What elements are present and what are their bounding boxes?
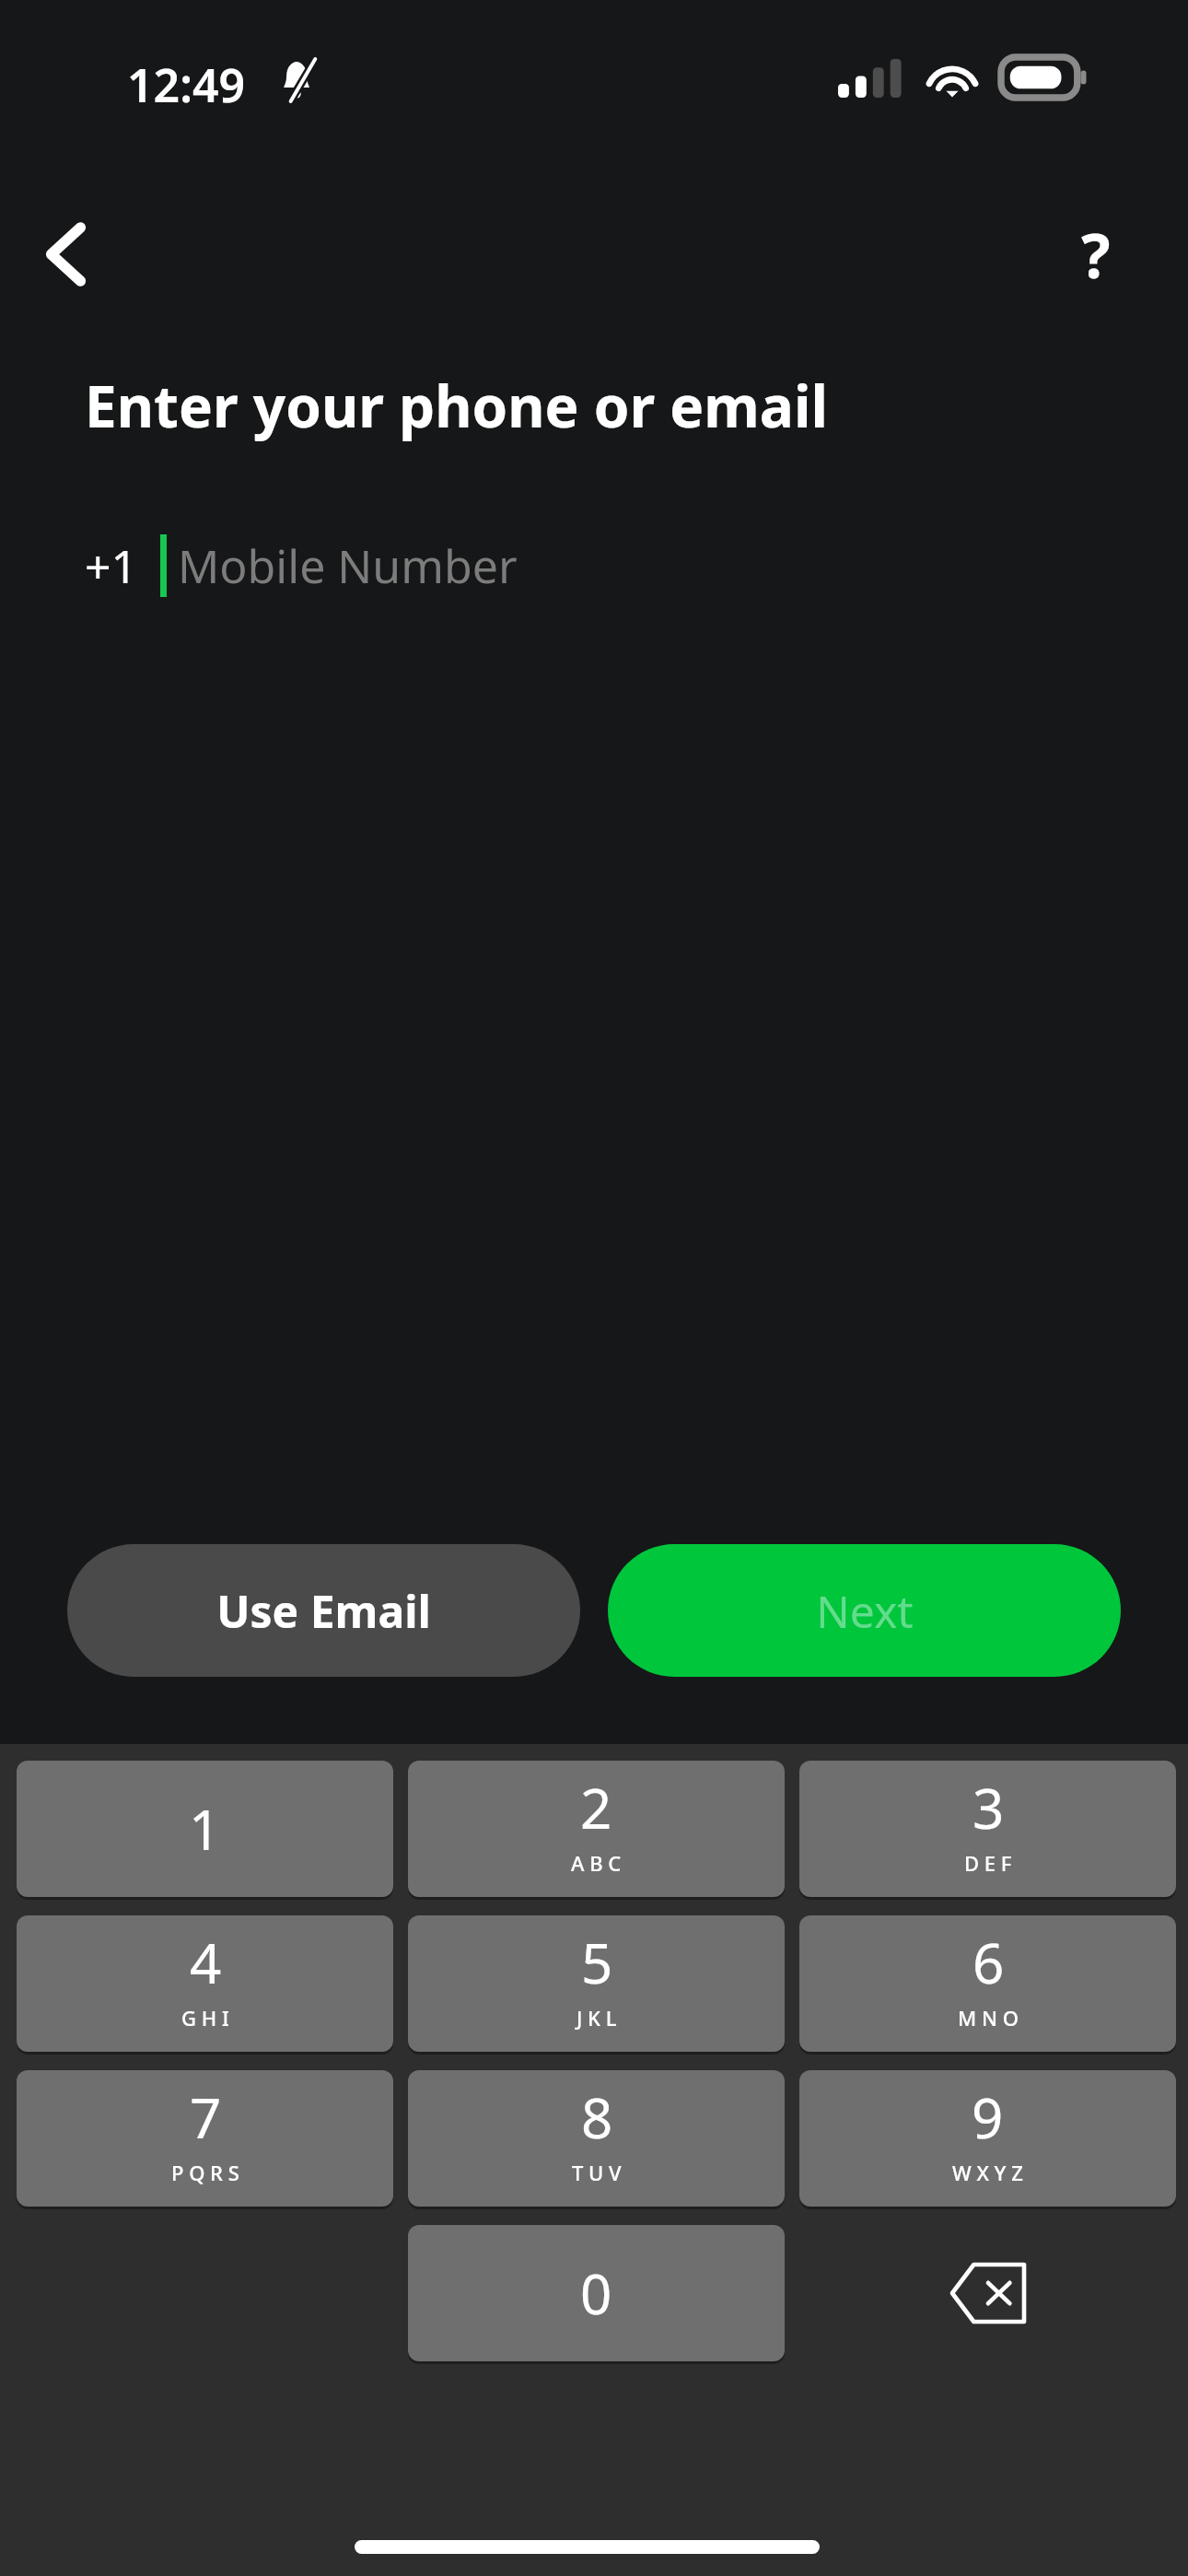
staticText: Mobile Number [178,534,518,597]
staticText: 9 [972,2079,1004,2155]
button[interactable]: Help [1042,201,1149,308]
staticText: D E F [964,1849,1012,1877]
button[interactable]: 8 [408,2070,785,2207]
staticText: +1 [85,534,138,597]
staticText: G H I [181,2004,229,2032]
button[interactable]: +1 [85,525,1188,606]
button[interactable]: Back [13,201,120,308]
button[interactable]: 1 [17,1761,393,1897]
staticText: M N O [958,2004,1019,2032]
button[interactable]: 6 [799,1915,1176,2052]
staticText: P Q R S [171,2159,239,2186]
button[interactable]: Delete [799,2225,1176,2361]
staticText: Enter your phone or email [85,367,828,444]
button[interactable]: 4 [17,1915,393,2052]
button[interactable]: Next [608,1544,1121,1677]
staticText: A B C [571,1849,622,1877]
staticText: 12:49 [127,53,246,116]
staticText: ? [1081,213,1111,296]
button[interactable]: 3 [799,1761,1176,1897]
staticText: T U V [572,2159,622,2186]
staticText: W X Y Z [952,2159,1023,2186]
staticText: 7 [190,2079,222,2155]
staticText: J K L [577,2004,617,2032]
staticText: 0 [580,2255,612,2331]
button[interactable]: 5 [408,1915,785,2052]
staticText: 2 [580,1770,612,1845]
staticText: 6 [973,1925,1005,2000]
staticText: 4 [190,1925,222,2000]
button[interactable]: 7 [17,2070,393,2207]
staticText: 1 [189,1791,221,1867]
button[interactable]: 0 [408,2225,785,2361]
button[interactable]: Use Email [67,1544,580,1677]
staticText: 5 [581,1925,613,2000]
staticText: 3 [973,1770,1005,1845]
staticText: Next [816,1581,914,1641]
button[interactable]: 2 [408,1761,785,1897]
staticText: Use Email [216,1581,431,1641]
button[interactable]: 9 [799,2070,1176,2207]
staticText: 8 [581,2079,613,2155]
